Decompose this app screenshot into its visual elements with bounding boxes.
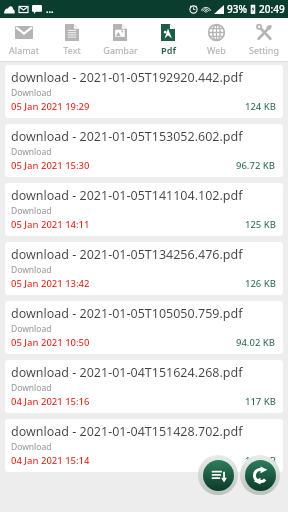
staticText: Download <box>11 323 52 335</box>
staticText: download - 2021-01-05T192920.442.pdf <box>11 69 243 86</box>
staticText: Download <box>11 205 52 217</box>
button[interactable]: download - 2021-01-04T151428.702.pdf <box>5 419 283 472</box>
button[interactable]: Refresh <box>240 455 280 495</box>
staticText: 05 Jan 2021 15:30 <box>11 159 90 172</box>
staticText: 96.72 KB <box>236 159 276 172</box>
staticText: 117 KB <box>245 395 276 408</box>
button[interactable]: Setting <box>240 18 288 62</box>
button[interactable]: download - 2021-01-05T141104.102.pdf <box>5 183 283 236</box>
staticText: 05 Jan 2021 19:29 <box>11 100 90 113</box>
staticText: ... <box>46 3 54 15</box>
button[interactable]: Alamat <box>0 18 48 62</box>
staticText: 93% <box>227 2 247 16</box>
button[interactable]: download - 2021-01-05T192920.442.pdf <box>5 65 283 118</box>
staticText: download - 2021-01-04T151428.702.pdf <box>11 423 243 440</box>
staticText: 04 Jan 2021 15:16 <box>11 395 90 408</box>
staticText: 04 Jan 2021 15:14 <box>11 454 90 467</box>
staticText: download - 2021-01-05T105050.759.pdf <box>11 305 243 322</box>
staticText: 94.02 KB <box>236 336 276 349</box>
staticText: Download <box>11 146 52 158</box>
staticText: 05 Jan 2021 13:42 <box>11 277 90 290</box>
button[interactable]: Web <box>192 18 240 62</box>
staticText: Setting <box>249 44 279 56</box>
staticText: 125 KB <box>245 218 276 231</box>
staticText: Alamat <box>9 44 39 56</box>
staticText: download - 2021-01-04T151624.268.pdf <box>11 364 243 381</box>
staticText: Download <box>11 382 52 394</box>
button[interactable]: Pdf <box>144 18 192 62</box>
staticText: Pdf <box>161 44 176 56</box>
staticText: download - 2021-01-05T153052.602.pdf <box>11 128 243 145</box>
button[interactable]: download - 2021-01-05T134256.476.pdf <box>5 242 283 295</box>
button[interactable]: download - 2021-01-05T153052.602.pdf <box>5 124 283 177</box>
button[interactable]: Gambar <box>96 18 144 62</box>
button[interactable]: download - 2021-01-05T105050.759.pdf <box>5 301 283 354</box>
staticText: Download <box>11 441 52 453</box>
staticText: download - 2021-01-05T134256.476.pdf <box>11 246 243 263</box>
staticText: 124 KB <box>245 100 276 113</box>
button[interactable]: Download all <box>198 455 238 495</box>
staticText: 126 KB <box>245 277 276 290</box>
staticText: 118 KB <box>245 454 276 467</box>
staticText: Web <box>207 44 226 56</box>
staticText: 05 Jan 2021 10:50 <box>11 336 90 349</box>
staticText: 05 Jan 2021 14:11 <box>11 218 90 231</box>
staticText: Download <box>11 264 52 276</box>
staticText: 20:49 <box>259 2 285 16</box>
staticText: Gambar <box>103 44 138 56</box>
staticText: Text <box>63 44 81 56</box>
staticText: Download <box>11 87 52 99</box>
button[interactable]: Text <box>48 18 96 62</box>
staticText: download - 2021-01-05T141104.102.pdf <box>11 187 243 204</box>
button[interactable]: download - 2021-01-04T151624.268.pdf <box>5 360 283 413</box>
